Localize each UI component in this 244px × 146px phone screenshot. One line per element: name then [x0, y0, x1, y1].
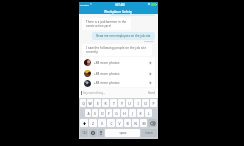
staticText: T — [113, 101, 115, 106]
button[interactable]: C — [107, 119, 115, 127]
button[interactable]: M — [140, 119, 147, 127]
staticText: D — [101, 111, 104, 116]
button[interactable]: B — [124, 119, 131, 127]
staticText: J — [132, 111, 133, 116]
staticText: G — [115, 111, 118, 116]
button[interactable]: L — [145, 109, 152, 117]
staticText: M — [142, 121, 146, 126]
button[interactable]: P — [150, 99, 157, 107]
staticText: S — [94, 111, 96, 116]
button[interactable]: Send — [147, 90, 156, 96]
staticText: There is a jackhammer in the constructio… — [86, 20, 127, 28]
button[interactable]: Backspace — [148, 119, 157, 127]
staticText: P — [152, 101, 155, 106]
button[interactable]: O — [142, 99, 149, 107]
staticText: H — [123, 111, 126, 116]
staticText: No SIM — [80, 3, 89, 6]
button[interactable]: return — [141, 129, 157, 137]
staticText: I — [137, 101, 139, 106]
button[interactable]: R — [102, 99, 109, 107]
staticText: U — [128, 101, 131, 106]
button[interactable]: +88 more photos — [81, 79, 155, 87]
button[interactable]: W — [87, 99, 93, 107]
staticText: space — [119, 131, 127, 135]
button[interactable]: X — [98, 119, 106, 127]
staticText: I saw the following people on the job si… — [86, 46, 147, 54]
staticText: +88 more photos — [94, 61, 120, 65]
button[interactable]: I — [134, 99, 141, 107]
button[interactable]: E — [94, 99, 101, 107]
button[interactable]: Dictate — [98, 129, 104, 137]
staticText: A — [87, 111, 90, 116]
staticText: +88 more photos — [94, 72, 120, 76]
staticText: O — [144, 101, 147, 106]
button[interactable]: V — [116, 119, 123, 127]
staticText: 9:41 AM — [115, 3, 125, 6]
staticText: Y — [121, 101, 123, 106]
button[interactable]: H — [121, 109, 128, 117]
button[interactable]: G — [113, 109, 120, 117]
staticText: E — [97, 101, 99, 106]
button[interactable]: F — [106, 109, 112, 117]
staticText: C — [110, 121, 113, 126]
button[interactable]: +88 more photos — [81, 68, 155, 79]
button[interactable]: space — [105, 129, 140, 137]
staticText: Z — [92, 121, 94, 126]
staticText: Workplace Safety — [104, 9, 133, 13]
button[interactable]: N — [132, 119, 139, 127]
staticText: K — [139, 111, 142, 116]
staticText: X — [101, 121, 103, 126]
staticText: +88 more photos — [94, 81, 120, 85]
staticText: Delivered — [144, 40, 154, 43]
staticText: V — [118, 121, 121, 126]
button[interactable]: Z — [89, 119, 97, 127]
button[interactable]: Switch keyboard — [89, 129, 97, 137]
staticText: Q — [82, 101, 85, 106]
staticText: R — [104, 101, 107, 106]
staticText: W — [88, 101, 92, 106]
button[interactable]: D — [99, 109, 105, 117]
button[interactable]: K — [137, 109, 144, 117]
button[interactable]: J — [129, 109, 136, 117]
staticText: Show me non employees on the job site — [96, 34, 151, 38]
button[interactable]: +88 more photos — [81, 57, 155, 68]
staticText: 123 — [82, 131, 87, 135]
staticText: L — [148, 111, 150, 116]
button[interactable]: U — [126, 99, 133, 107]
button[interactable]: T — [110, 99, 117, 107]
staticText: N — [134, 121, 137, 126]
button[interactable]: Shift — [80, 119, 88, 127]
button[interactable]: 123 — [80, 129, 88, 137]
staticText: B — [126, 121, 129, 126]
staticText: Say something... — [83, 91, 106, 95]
button[interactable]: Q — [80, 99, 86, 107]
staticText: F — [108, 111, 110, 116]
button[interactable]: Y — [118, 99, 125, 107]
staticText: return — [145, 131, 153, 135]
button[interactable]: S — [92, 109, 98, 117]
button[interactable]: A — [85, 109, 91, 117]
staticText: Send — [148, 91, 155, 95]
